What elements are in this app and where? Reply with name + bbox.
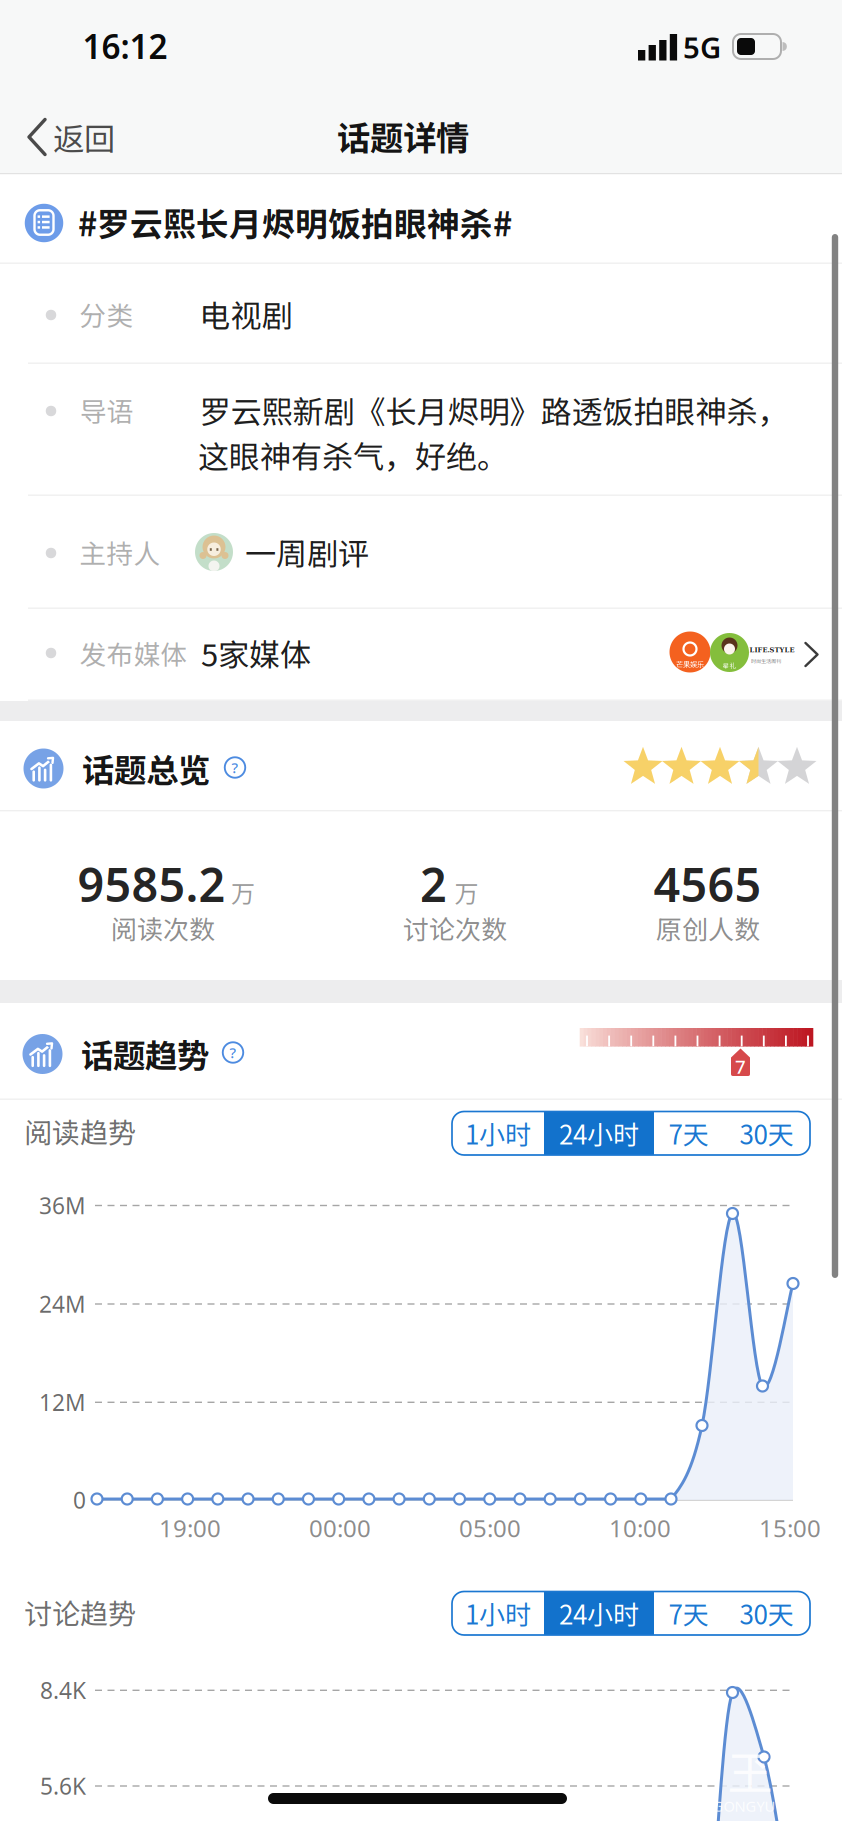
staticText: 7: [735, 1054, 746, 1079]
staticText: 7天: [668, 1594, 708, 1632]
staticText: 00:00: [309, 1512, 371, 1544]
staticText: 9585.2: [77, 853, 225, 915]
staticText: 返回: [53, 114, 115, 160]
staticText: 芒果娱乐: [676, 659, 704, 669]
staticText: 分类: [79, 295, 133, 333]
staticText: 玊: [727, 1737, 772, 1803]
staticText: 16:12: [82, 24, 167, 68]
button[interactable]: 24小时: [544, 1111, 654, 1155]
staticText: 1小时: [465, 1114, 531, 1152]
staticText: 05:00: [459, 1512, 521, 1544]
button[interactable]: 返回: [18, 114, 128, 160]
staticText: 讨论趋势: [24, 1592, 136, 1632]
staticText: 阅读次数: [111, 909, 215, 947]
staticText: 1小时: [465, 1594, 531, 1632]
button[interactable]: 7天: [654, 1591, 723, 1635]
staticText: 24小时: [559, 1114, 639, 1152]
staticText: 24M: [39, 1289, 86, 1319]
button[interactable]: 30天: [723, 1111, 810, 1155]
staticText: 15:00: [759, 1512, 821, 1544]
staticText: 5G: [683, 27, 721, 66]
staticText: 这眼神有杀气，好绝。: [198, 432, 508, 477]
staticText: 话题总览: [82, 744, 210, 791]
staticText: 阅读趋势: [24, 1111, 136, 1151]
staticText: 5.6K: [40, 1771, 86, 1801]
button[interactable]: 帮助: [221, 1040, 245, 1064]
staticText: 0: [73, 1485, 86, 1515]
button[interactable]: 发布媒体: [35, 615, 842, 691]
staticText: 时尚生活周刊: [751, 657, 781, 665]
staticText: 导语: [79, 391, 133, 429]
staticText: LIFE.STYLE: [749, 646, 794, 654]
staticText: 发布媒体: [79, 634, 187, 672]
staticText: 24小时: [559, 1594, 639, 1632]
staticText: 主持人: [79, 533, 160, 571]
button[interactable]: 1小时: [452, 1591, 544, 1635]
staticText: #罗云熙长月烬明饭拍眼神杀#: [78, 198, 512, 246]
button[interactable]: 帮助: [223, 755, 247, 779]
button[interactable]: 7天: [654, 1111, 723, 1155]
staticText: 讨论次数: [403, 909, 507, 947]
staticText: 一周剧评: [245, 529, 369, 574]
staticText: 电视剧: [199, 291, 292, 336]
staticText: 话题趋势: [81, 1030, 209, 1077]
staticText: 19:00: [159, 1512, 221, 1544]
staticText: 10:00: [609, 1512, 671, 1544]
staticText: 36M: [39, 1190, 86, 1220]
staticText: ?: [231, 758, 238, 777]
staticText: 话题详情: [337, 112, 469, 160]
staticText: 4565: [653, 853, 761, 915]
staticText: 万: [454, 875, 478, 909]
button[interactable]: 24小时: [544, 1591, 654, 1635]
staticText: 30天: [739, 1594, 793, 1632]
staticText: 12M: [39, 1387, 86, 1417]
staticText: 原创人数: [656, 909, 760, 947]
staticText: ?: [229, 1043, 236, 1062]
staticText: 5家媒体: [201, 630, 311, 675]
staticText: GONGYU: [712, 1796, 775, 1816]
staticText: 7天: [668, 1114, 708, 1152]
staticText: 30天: [739, 1114, 793, 1152]
staticText: 星礼: [722, 661, 736, 670]
staticText: 罗云熙新剧《长月烬明》路透饭拍眼神杀，: [199, 387, 788, 432]
staticText: 万: [231, 875, 255, 909]
button[interactable]: 1小时: [452, 1111, 544, 1155]
staticText: 2: [420, 853, 447, 915]
button[interactable]: 30天: [723, 1591, 810, 1635]
staticText: 8.4K: [40, 1675, 86, 1705]
